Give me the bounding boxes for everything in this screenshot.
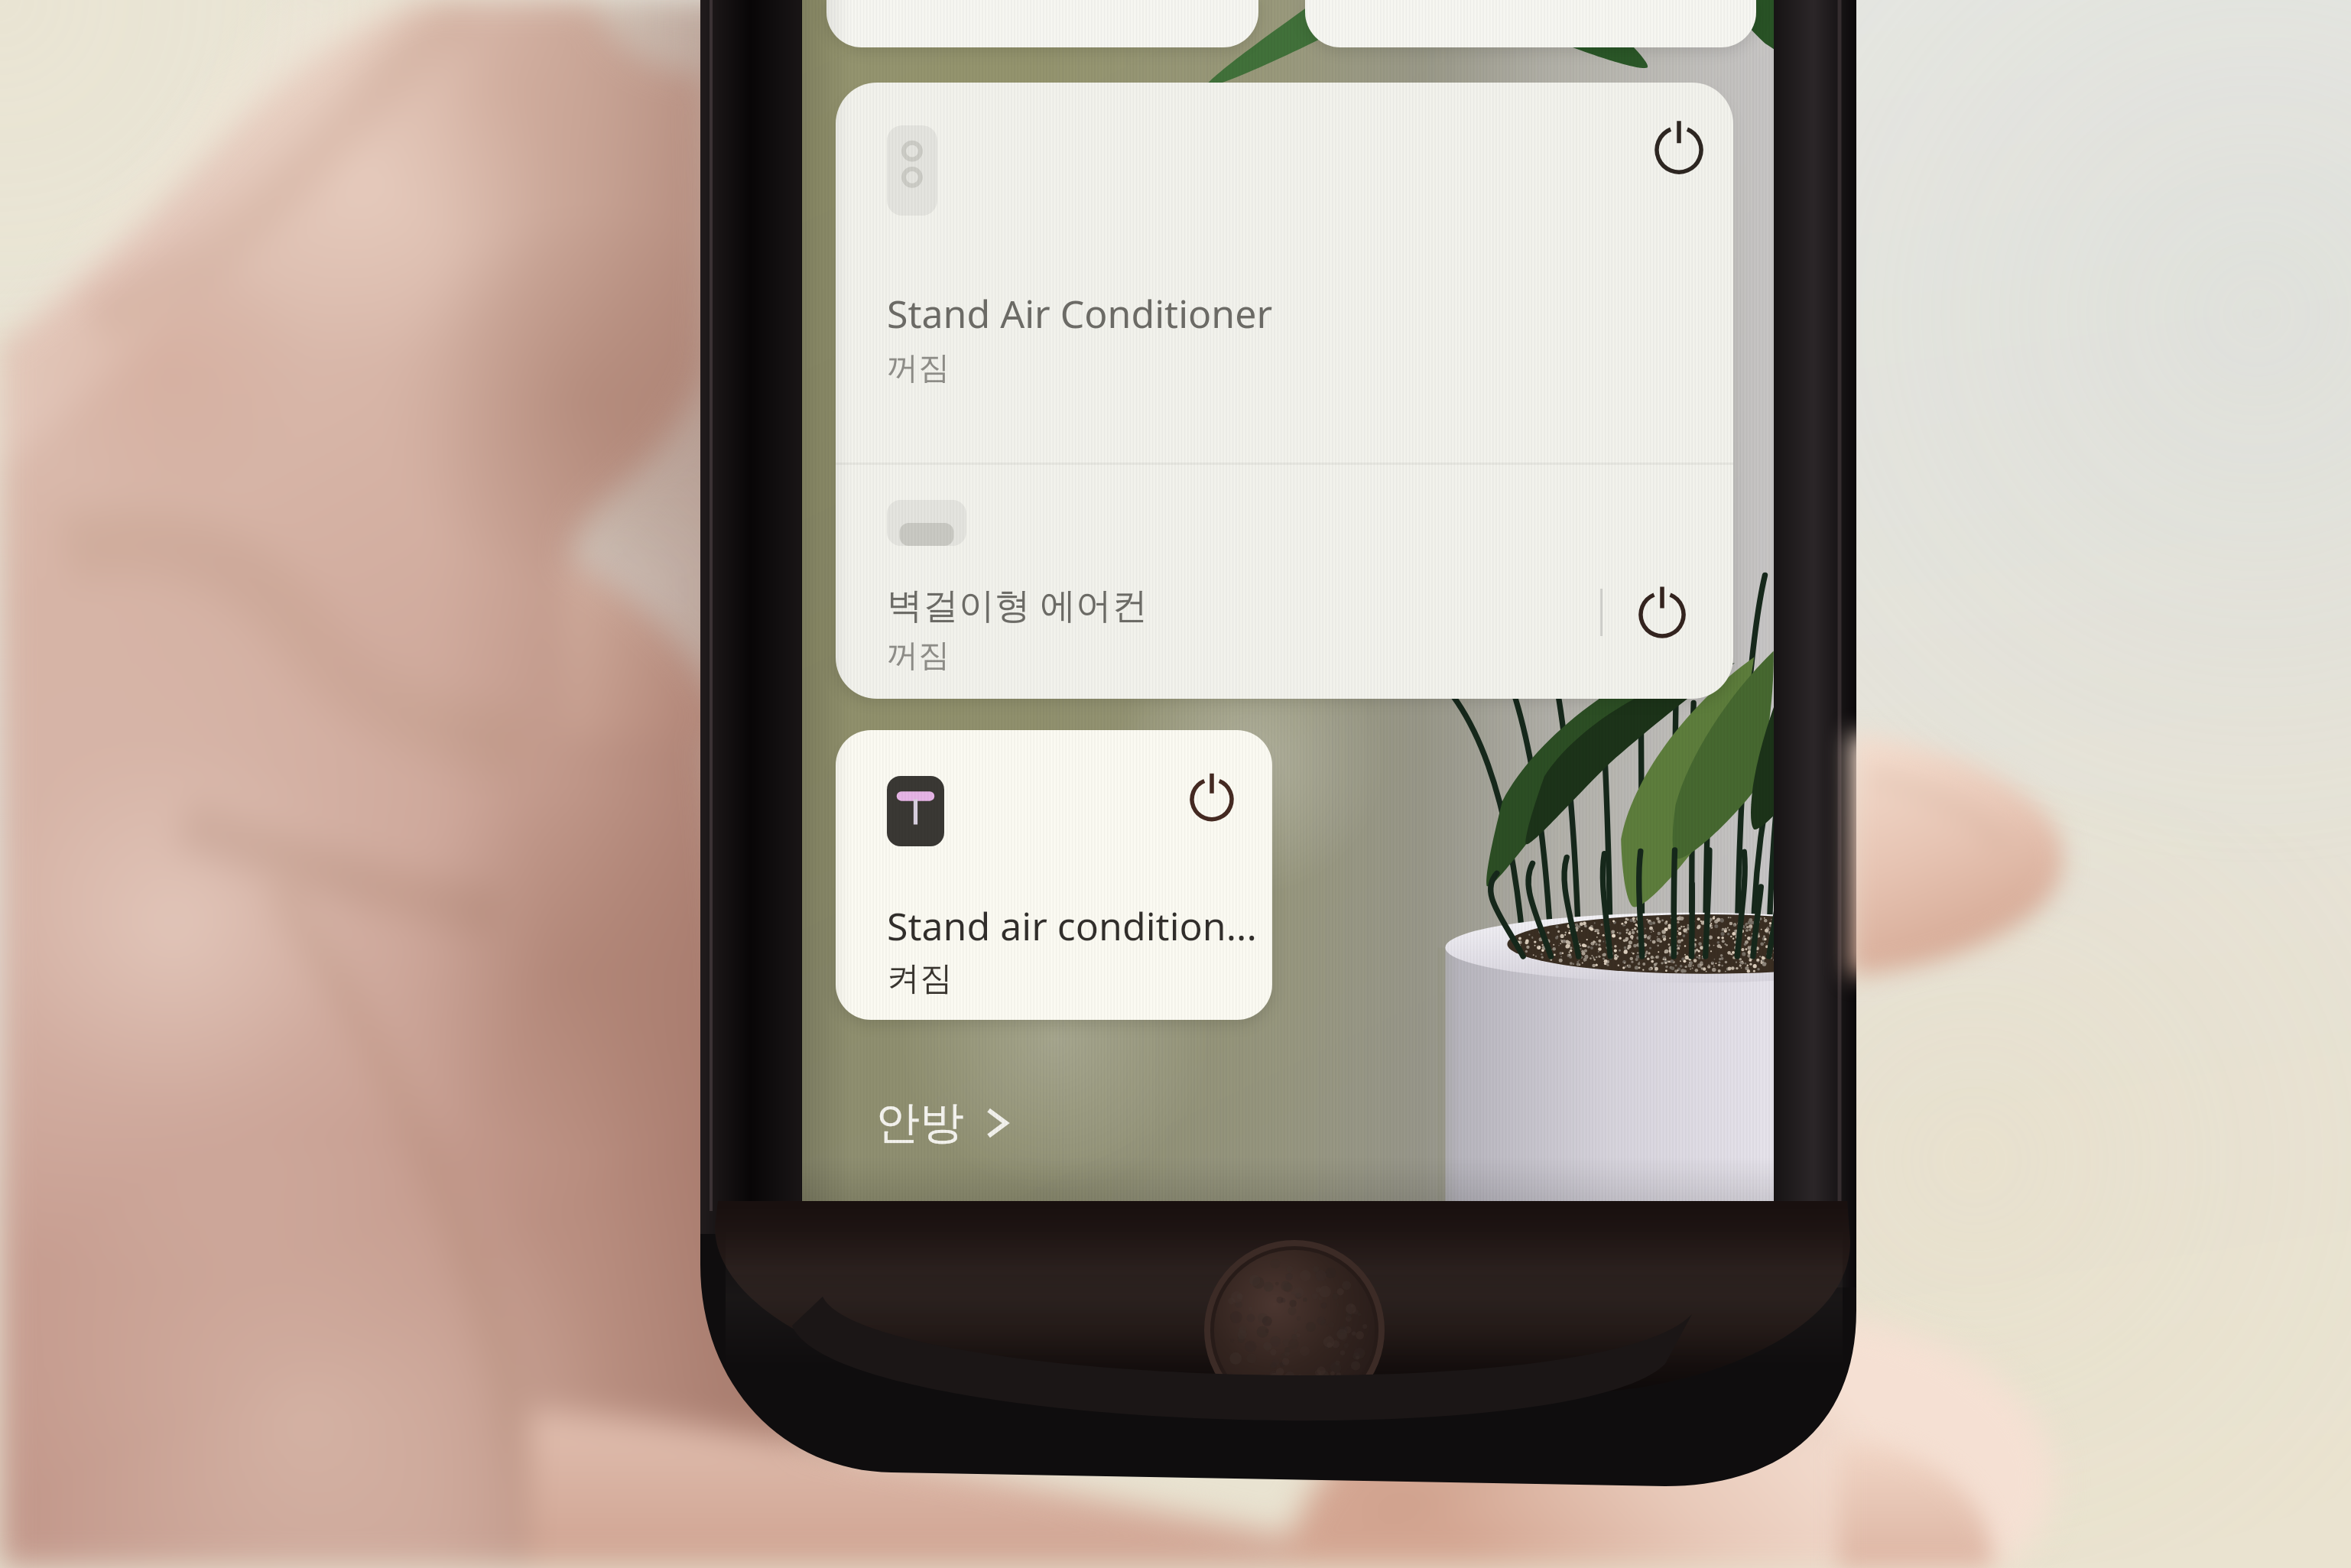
staticText: 꺼짐 (887, 349, 950, 388)
button[interactable] (826, 0, 1258, 47)
button[interactable]: Power (836, 83, 1733, 699)
button[interactable]: Power (1633, 101, 1725, 193)
button[interactable] (1305, 0, 1756, 47)
button[interactable]: Power (1166, 751, 1258, 842)
staticText: 꺼짐 (887, 636, 950, 676)
staticText: Stand Air Conditioner (887, 287, 1273, 339)
button[interactable]: Power (836, 730, 1272, 1020)
staticText: 안방 (875, 1095, 964, 1151)
button[interactable]: Power (1616, 566, 1708, 657)
staticText: 벽걸이형 에어컨 (887, 579, 1148, 628)
staticText: Stand air condition... (887, 900, 1257, 952)
staticText: 켜짐 (887, 958, 953, 999)
button[interactable]: 안방 (875, 1095, 1013, 1151)
